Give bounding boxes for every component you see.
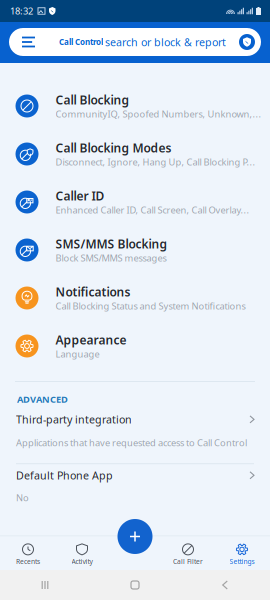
- staticText: Call Blocking Modes: [55, 140, 171, 156]
- button[interactable]: Call Control: [0, 22, 270, 56]
- staticText: Recents: [16, 557, 40, 566]
- button[interactable]: Back: [180, 581, 270, 589]
- staticText: Disconnect, Ignore, Hang Up, Call Blocki…: [55, 156, 255, 168]
- staticText: search or block & report: [105, 35, 226, 49]
- staticText: Language: [55, 348, 99, 360]
- staticText: Caller ID: [55, 188, 104, 204]
- button[interactable]: Home: [90, 581, 180, 589]
- staticText: Notifications: [55, 284, 130, 300]
- button[interactable]: Call Filter: [161, 539, 215, 570]
- staticText: Call Blocking: [55, 92, 129, 108]
- button[interactable]: Default Phone App: [0, 464, 270, 512]
- staticText: No: [16, 491, 29, 504]
- button[interactable]: Notifications: [0, 274, 270, 322]
- staticText: CommunityIQ, Spoofed Numbers, Unknown,..…: [55, 108, 261, 120]
- staticText: Call Control: [59, 37, 103, 47]
- staticText: Applications that have requested access …: [16, 436, 247, 449]
- staticText: Block SMS/MMS messages: [55, 252, 166, 264]
- button[interactable]: Activity: [55, 539, 109, 570]
- staticText: Call Blocking Status and System Notifica…: [55, 300, 245, 312]
- staticText: Default Phone App: [16, 468, 113, 482]
- staticText: Appearance: [55, 332, 126, 348]
- button[interactable]: Third-party integration: [0, 405, 270, 463]
- staticText: Third-party integration: [16, 412, 132, 426]
- button[interactable]: SMS/MMS Blocking: [0, 226, 270, 274]
- button[interactable]: New: [117, 519, 152, 554]
- staticText: 18:32: [10, 5, 33, 17]
- staticText: Activity: [71, 557, 92, 566]
- staticText: Call Filter: [173, 557, 203, 566]
- staticText: Settings: [229, 557, 254, 566]
- button[interactable]: Recents: [1, 539, 55, 570]
- button[interactable]: Call Blocking Modes: [0, 130, 270, 178]
- button[interactable]: Settings: [215, 539, 269, 570]
- button[interactable]: Recent apps: [0, 581, 90, 589]
- button[interactable]: Call Blocking: [0, 82, 270, 130]
- staticText: SMS/MMS Blocking: [55, 236, 167, 252]
- button[interactable]: Appearance: [0, 322, 270, 370]
- staticText: ADVANCED: [17, 393, 68, 405]
- staticText: Enhanced Caller ID, Call Screen, Call Ov…: [55, 204, 249, 216]
- button[interactable]: Caller ID: [0, 178, 270, 226]
